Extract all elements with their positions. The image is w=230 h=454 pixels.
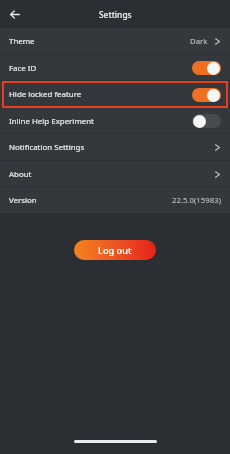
staticText: Inline Help Experiment	[9, 116, 94, 127]
button[interactable]: Toggle on	[192, 88, 221, 102]
staticText: Version	[9, 195, 37, 206]
staticText: Theme	[9, 36, 35, 47]
button[interactable]: Log out	[74, 240, 156, 260]
button[interactable]: Toggle on	[192, 61, 221, 75]
button[interactable]: About	[0, 161, 230, 187]
button[interactable]: Inline Help Experiment	[0, 108, 230, 134]
button[interactable]: Theme	[0, 28, 230, 55]
staticText: Dark	[190, 36, 208, 47]
button[interactable]: Back	[4, 3, 26, 25]
button[interactable]: Notification Settings	[0, 134, 230, 161]
button[interactable]: Toggle off	[192, 114, 221, 128]
button[interactable]: Version	[0, 187, 230, 213]
staticText: Settings	[99, 9, 132, 20]
staticText: Face ID	[9, 63, 37, 74]
staticText: Hide locked feature	[9, 89, 82, 100]
staticText: 22.5.0(15983)	[172, 195, 221, 206]
staticText: About	[9, 169, 32, 180]
staticText: Log out	[98, 244, 132, 257]
staticText: Notification Settings	[9, 142, 85, 153]
button[interactable]: Hide locked feature	[0, 81, 230, 108]
button[interactable]: Face ID	[0, 55, 230, 81]
